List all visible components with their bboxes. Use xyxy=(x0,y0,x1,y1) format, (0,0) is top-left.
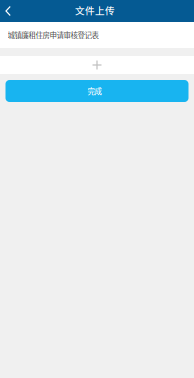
staticText: 城镇廉租住房申请审核登记表 xyxy=(7,30,98,40)
button[interactable]: Back xyxy=(0,0,24,22)
button[interactable]: Add file xyxy=(0,56,194,74)
staticText: 文件上传 xyxy=(75,3,115,17)
button[interactable]: 完成 xyxy=(5,80,188,102)
staticText: 完成 xyxy=(87,86,101,96)
